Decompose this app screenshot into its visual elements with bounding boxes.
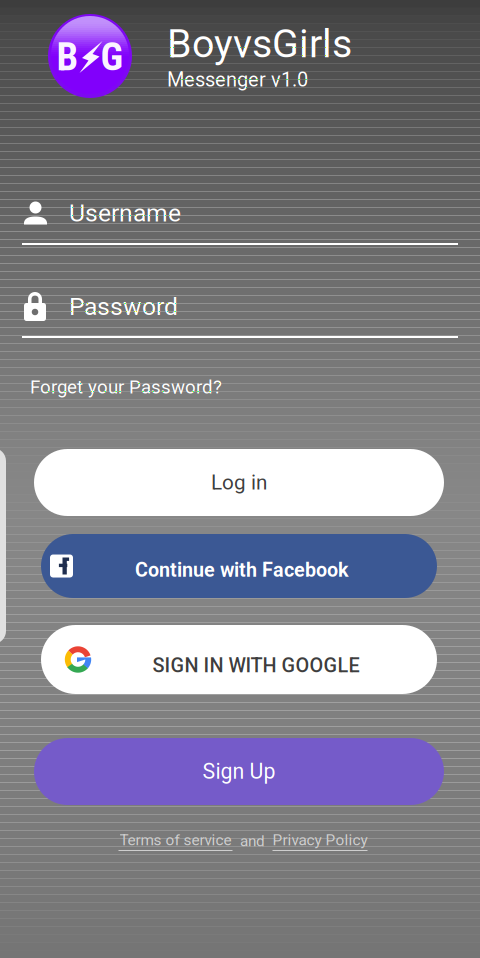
staticText: Username (69, 198, 181, 227)
button[interactable]: SIGN IN WITH GOOGLE (41, 625, 437, 694)
button[interactable]: Log in (34, 449, 444, 516)
staticText: Log in (211, 470, 267, 495)
staticText: SIGN IN WITH GOOGLE (152, 654, 359, 677)
button[interactable]: Continue with Facebook (41, 534, 437, 598)
staticText: and (240, 832, 265, 850)
button[interactable]: Forget your Password? (30, 375, 230, 399)
staticText: Terms of service (119, 831, 231, 849)
staticText: Messenger v1.0 (167, 68, 308, 91)
button[interactable]: Sign Up (34, 738, 444, 805)
staticText: BoyvsGirls (167, 21, 352, 67)
staticText: B (56, 34, 78, 80)
button[interactable]: Terms of service (118, 831, 232, 851)
staticText: Sign Up (202, 759, 275, 784)
button[interactable]: Privacy Policy (272, 831, 367, 851)
staticText: Password (69, 292, 178, 321)
staticText: G (100, 34, 123, 80)
staticText: Continue with Facebook (135, 558, 349, 581)
staticText: Forget your Password? (30, 376, 222, 398)
staticText: Privacy Policy (272, 831, 367, 849)
